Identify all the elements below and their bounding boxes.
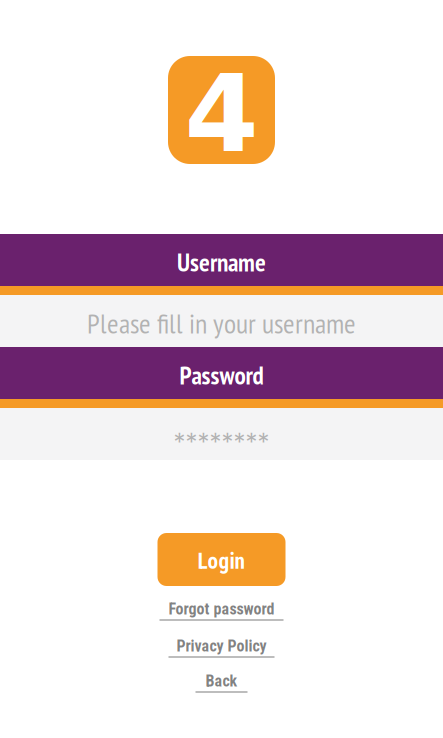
staticText: Login <box>197 549 245 574</box>
staticText: Forgot password <box>168 600 274 618</box>
button[interactable]: Login <box>157 533 285 586</box>
staticText: ******** <box>173 426 269 455</box>
staticText: Please fill in your username <box>87 305 356 341</box>
staticText: Privacy Policy <box>176 637 266 655</box>
staticText: 4 <box>184 52 258 176</box>
staticText: Password <box>179 359 263 391</box>
button[interactable]: Forgot password <box>159 597 283 621</box>
button[interactable]: Privacy Policy <box>168 634 274 658</box>
staticText: Username <box>177 246 266 278</box>
button[interactable]: Back <box>195 669 247 693</box>
staticText: Back <box>205 672 237 690</box>
